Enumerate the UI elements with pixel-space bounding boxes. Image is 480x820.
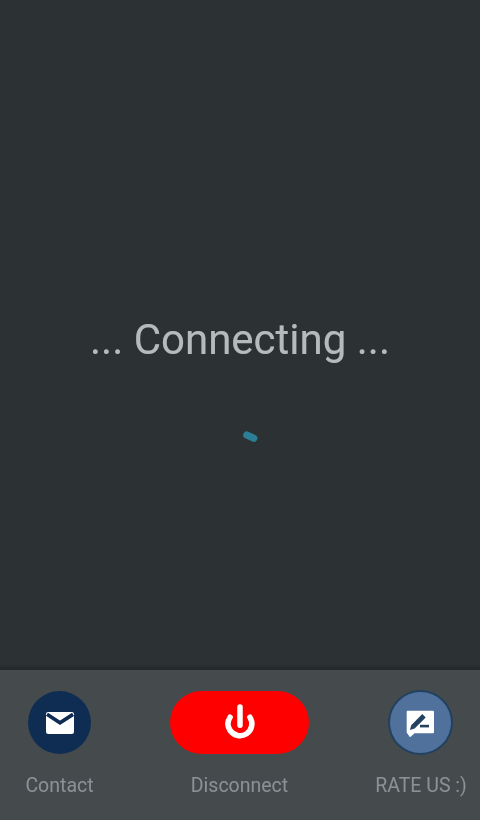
button[interactable]: Contact	[6, 686, 113, 798]
staticText: ... Connecting ...	[0, 315, 480, 364]
other: Rate us	[388, 690, 453, 755]
staticText: RATE US :)	[367, 774, 475, 797]
staticText: Disconnect	[170, 774, 309, 797]
button[interactable]: Rate us	[367, 686, 475, 798]
staticText: Contact	[6, 774, 113, 797]
other: Contact	[28, 691, 91, 754]
button[interactable]: Disconnect	[170, 686, 309, 798]
other: Disconnect	[170, 691, 309, 754]
